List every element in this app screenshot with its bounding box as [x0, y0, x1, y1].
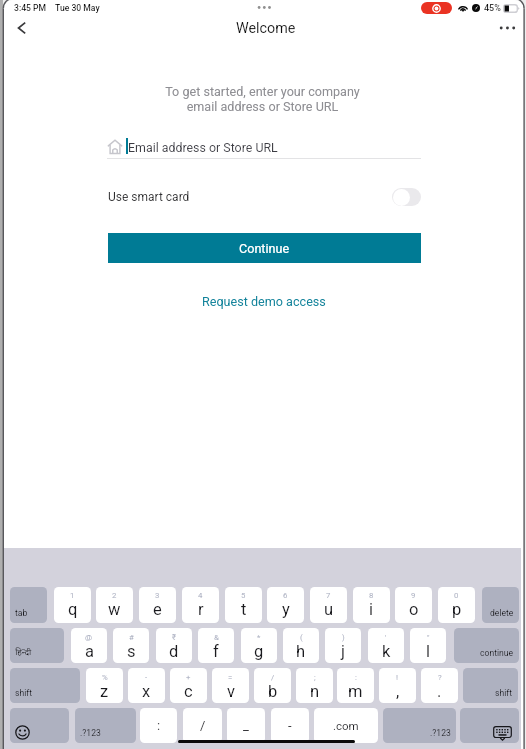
button[interactable]	[10, 708, 69, 743]
button[interactable]: continue	[454, 628, 519, 663]
button[interactable]: /	[254, 668, 291, 703]
button[interactable]: /	[183, 708, 222, 743]
staticText: '	[385, 633, 387, 642]
button[interactable]: !	[379, 668, 416, 703]
button[interactable]	[392, 188, 421, 206]
button[interactable]: .?123	[75, 708, 136, 743]
staticText: ,	[396, 682, 400, 701]
button[interactable]: %	[86, 668, 123, 703]
button[interactable]: Continue	[108, 233, 421, 263]
button[interactable]: Back	[7, 13, 37, 43]
staticText: h	[296, 642, 306, 661]
button[interactable]: 9	[395, 587, 432, 623]
staticText: 4	[198, 591, 203, 600]
staticText: e	[153, 600, 162, 619]
staticText: .?123	[80, 728, 101, 738]
button[interactable]: 5	[225, 587, 262, 623]
staticText: !	[396, 673, 399, 682]
staticText: &	[214, 633, 219, 642]
staticText: -	[145, 673, 148, 682]
button[interactable]: _	[227, 708, 265, 743]
button[interactable]: 8	[353, 587, 390, 623]
staticText: k	[382, 642, 391, 661]
staticText: r	[198, 600, 204, 619]
staticText: shift	[495, 688, 513, 698]
button[interactable]: -	[271, 708, 309, 743]
staticText: .?123	[430, 728, 451, 738]
staticText: 1	[70, 591, 75, 600]
button[interactable]: .?123	[383, 708, 456, 743]
button[interactable]: &	[198, 628, 234, 663]
staticText: =	[228, 673, 233, 682]
staticText: u	[324, 600, 334, 619]
staticText: ;	[314, 673, 316, 682]
button[interactable]: shift	[10, 668, 80, 703]
button[interactable]: :	[337, 668, 374, 703]
button[interactable]: 2	[96, 587, 133, 623]
staticText: continue	[480, 648, 514, 658]
staticText: d	[169, 642, 179, 661]
button[interactable]: '	[368, 628, 404, 663]
button[interactable]: tab	[10, 587, 47, 623]
button[interactable]: .com	[314, 708, 378, 743]
staticText: /	[271, 673, 275, 682]
button[interactable]: *	[241, 628, 277, 663]
staticText: 3:45 PM	[14, 3, 47, 13]
staticText: .com	[333, 719, 359, 732]
staticText: 7	[326, 591, 331, 600]
staticText: Welcome	[236, 20, 296, 37]
staticText: 9	[411, 591, 416, 600]
button[interactable]: :	[140, 708, 177, 743]
button[interactable]: 0	[438, 587, 475, 623]
staticText: @	[85, 633, 93, 642]
button[interactable]: -	[128, 668, 165, 703]
button[interactable]: 1	[54, 587, 91, 623]
staticText: o	[409, 600, 419, 619]
staticText: )	[342, 633, 345, 642]
button[interactable]: Request demo access	[196, 288, 332, 314]
staticText: हिन्दी	[15, 646, 32, 658]
button[interactable]: 6	[267, 587, 304, 623]
button[interactable]: @	[71, 628, 107, 663]
button[interactable]: 4	[182, 587, 219, 623]
staticText: p	[452, 600, 462, 619]
staticText: /	[200, 718, 206, 733]
staticText: -	[288, 718, 292, 733]
staticText: y	[282, 600, 290, 619]
button[interactable]: 3	[139, 587, 176, 623]
staticText: To get started, enter your company email…	[3, 84, 523, 114]
button[interactable]: Email address or Store URL	[128, 139, 420, 155]
button[interactable]: ?	[421, 668, 458, 703]
button[interactable]: More options	[496, 14, 524, 42]
button[interactable]: "	[410, 628, 446, 663]
staticText: 6	[283, 591, 288, 600]
staticText: *	[257, 633, 261, 642]
button[interactable]: =	[212, 668, 249, 703]
button[interactable]: हिन्दी	[10, 628, 64, 663]
button[interactable]: ₹	[156, 628, 192, 663]
button[interactable]: shift	[463, 668, 518, 703]
staticText: "	[427, 633, 430, 642]
staticText: Email address or Store URL	[128, 140, 278, 155]
staticText: a	[85, 642, 94, 661]
staticText: x	[142, 682, 151, 701]
staticText: .	[437, 682, 442, 701]
button[interactable]: +	[170, 668, 207, 703]
staticText: Use smart card	[108, 190, 190, 204]
button[interactable]: )	[325, 628, 361, 663]
staticText: w	[108, 600, 121, 619]
button[interactable]: ;	[296, 668, 333, 703]
staticText: _	[243, 718, 249, 733]
button[interactable]: #	[113, 628, 149, 663]
button[interactable]	[460, 708, 519, 743]
staticText: #	[129, 633, 134, 642]
button[interactable]: 7	[310, 587, 347, 623]
button[interactable]: (	[283, 628, 319, 663]
staticText: f	[213, 642, 219, 661]
staticText: n	[310, 682, 320, 701]
staticText: 2	[112, 591, 117, 600]
staticText: 3	[155, 591, 160, 600]
button[interactable]: delete	[482, 587, 519, 623]
staticText: l	[426, 642, 431, 661]
staticText: %	[102, 673, 108, 682]
